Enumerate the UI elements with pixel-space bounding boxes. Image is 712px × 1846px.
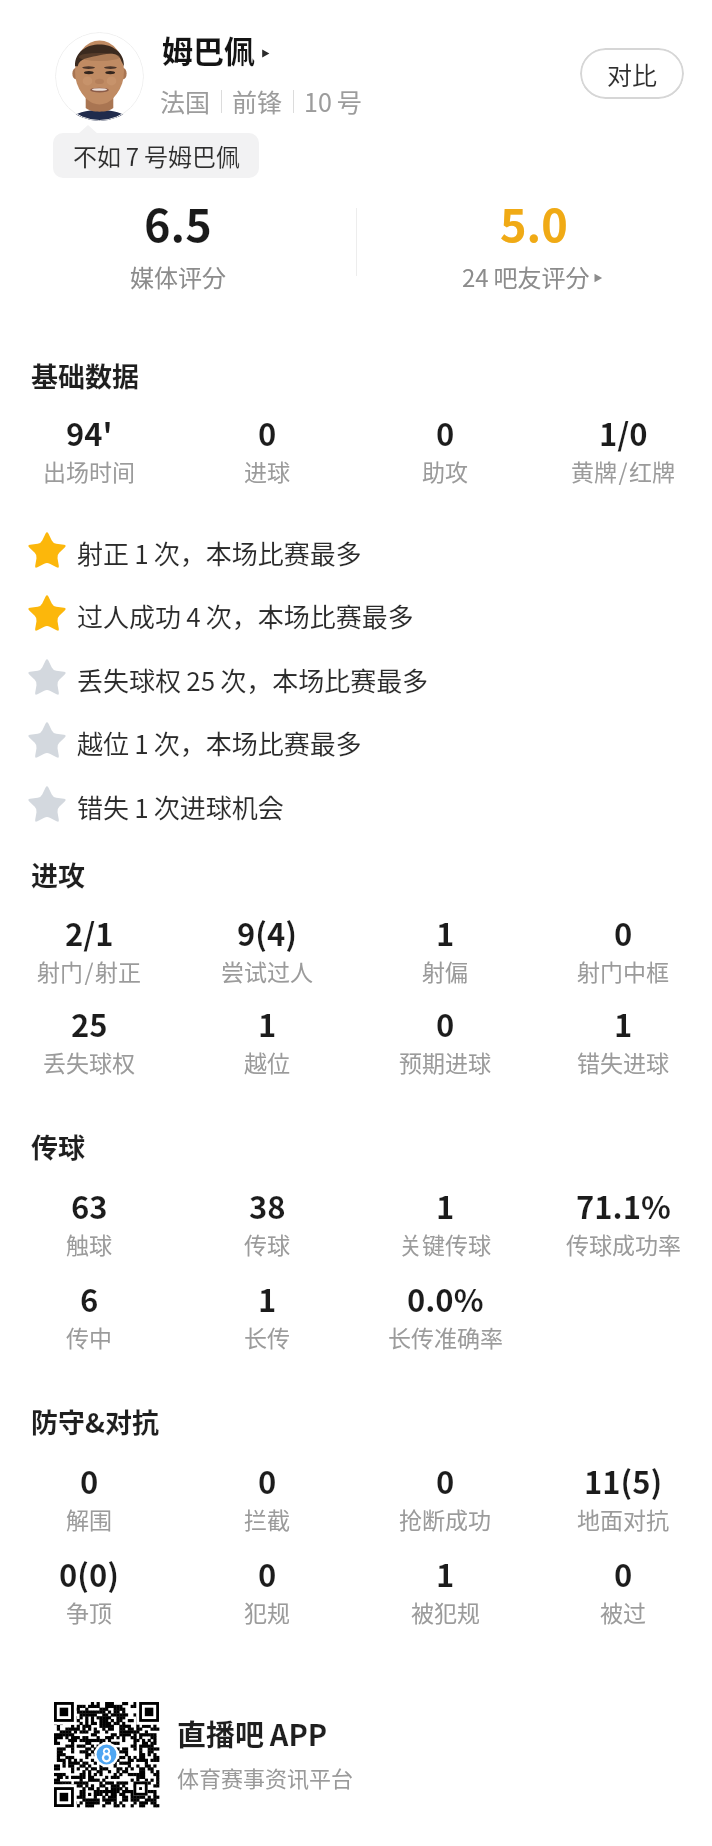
staticText: 0	[258, 1551, 277, 1596]
staticText: 地面对抗	[577, 1502, 669, 1535]
staticText: 1	[436, 1551, 455, 1596]
staticText: 0	[258, 1458, 277, 1503]
staticText: 进攻	[31, 855, 85, 894]
staticText: 0	[80, 1458, 99, 1503]
staticText: 9(4)	[237, 910, 298, 955]
staticText: 媒体评分	[130, 259, 226, 294]
staticText: 1/0	[599, 410, 648, 455]
staticText: 2/1	[65, 910, 114, 955]
staticText: 6	[80, 1276, 99, 1321]
staticText: 传球	[244, 1227, 290, 1260]
staticText: 姆巴佩	[162, 27, 255, 72]
staticText: 长传	[244, 1320, 290, 1353]
staticText: 0(0)	[59, 1551, 120, 1596]
staticText: 射正 1 次，本场比赛最多	[77, 534, 362, 572]
staticText: 1	[258, 1001, 277, 1046]
button[interactable]: 直播吧 APP	[177, 1712, 354, 1793]
button[interactable]: 6.5	[0, 190, 356, 300]
staticText: 防守&对抗	[31, 1402, 159, 1441]
staticText: 1	[258, 1276, 277, 1321]
button[interactable]: 对比	[580, 48, 684, 99]
button[interactable]: 不如 7 号姆巴佩	[53, 133, 259, 178]
staticText: 1	[436, 910, 455, 955]
staticText: 0	[258, 410, 277, 455]
staticText: 射门 / 射正	[37, 954, 141, 987]
staticText: 黄牌 / 红牌	[571, 454, 675, 487]
staticText: 犯规	[244, 1595, 290, 1628]
staticText: 关键传球	[399, 1227, 491, 1260]
button[interactable]: Player avatar	[55, 32, 144, 121]
staticText: 预期进球	[399, 1045, 491, 1078]
staticText: 争顶	[66, 1595, 112, 1628]
staticText: 越位	[244, 1045, 290, 1078]
staticText: 传球	[31, 1127, 85, 1166]
staticText: 长传准确率	[388, 1320, 503, 1353]
staticText: 63	[71, 1183, 108, 1228]
staticText: 不如 7 号姆巴佩	[73, 138, 240, 173]
staticText: 直播吧 APP	[177, 1712, 328, 1754]
staticText: 5.0	[500, 190, 568, 255]
staticText: 94'	[66, 410, 113, 455]
staticText: 错失 1 次进球机会	[77, 788, 284, 826]
staticText: 1	[436, 1183, 455, 1228]
staticText: 1	[614, 1001, 633, 1046]
staticText: 解围	[66, 1502, 112, 1535]
button[interactable]: 错失 1 次进球机会	[0, 787, 712, 827]
staticText: 丢失球权	[43, 1045, 135, 1078]
button[interactable]: 丢失球权 25 次，本场比赛最多	[0, 660, 712, 700]
staticText: 传球成功率	[566, 1227, 681, 1260]
staticText: 0	[614, 1551, 633, 1596]
staticText: 错失进球	[577, 1045, 669, 1078]
staticText: 对比	[607, 56, 658, 92]
staticText: 基础数据	[31, 356, 139, 395]
staticText: 10 号	[304, 83, 362, 119]
staticText: 38	[249, 1183, 286, 1228]
staticText: 射门中框	[577, 954, 669, 987]
button[interactable]: 射正 1 次，本场比赛最多	[0, 533, 712, 573]
button[interactable]: 姆巴佩	[162, 27, 273, 72]
staticText: 助攻	[422, 454, 468, 487]
button[interactable]: 过人成功 4 次，本场比赛最多	[0, 596, 712, 636]
button[interactable]: 越位 1 次，本场比赛最多	[0, 723, 712, 763]
other: QR code	[54, 1702, 159, 1807]
staticText: 前锋	[232, 83, 283, 119]
staticText: 25	[71, 1001, 108, 1046]
staticText: 被过	[600, 1595, 646, 1628]
staticText: 触球	[66, 1227, 112, 1260]
staticText: 71.1%	[576, 1183, 671, 1228]
staticText: 0	[436, 1458, 455, 1503]
staticText: 0	[436, 410, 455, 455]
staticText: 被犯规	[411, 1595, 480, 1628]
staticText: 过人成功 4 次，本场比赛最多	[77, 597, 414, 635]
staticText: 传中	[66, 1320, 112, 1353]
staticText: 11(5)	[584, 1458, 663, 1503]
staticText: 越位 1 次，本场比赛最多	[77, 724, 362, 762]
staticText: 0	[614, 910, 633, 955]
staticText: 出场时间	[43, 454, 135, 487]
staticText: 丢失球权 25 次，本场比赛最多	[77, 661, 429, 699]
staticText: 进球	[244, 454, 290, 487]
staticText: 0	[436, 1001, 455, 1046]
staticText: 射偏	[422, 954, 468, 987]
staticText: 0.0%	[407, 1276, 484, 1321]
staticText: 6.5	[144, 190, 212, 255]
staticText: 体育赛事资讯平台	[177, 1761, 354, 1793]
button[interactable]: 5.0	[356, 190, 712, 300]
staticText: 拦截	[244, 1502, 290, 1535]
staticText: 抢断成功	[399, 1502, 491, 1535]
staticText: 24 吧友评分	[462, 259, 590, 294]
staticText: 尝试过人	[221, 954, 313, 987]
staticText: 法国	[160, 83, 211, 119]
